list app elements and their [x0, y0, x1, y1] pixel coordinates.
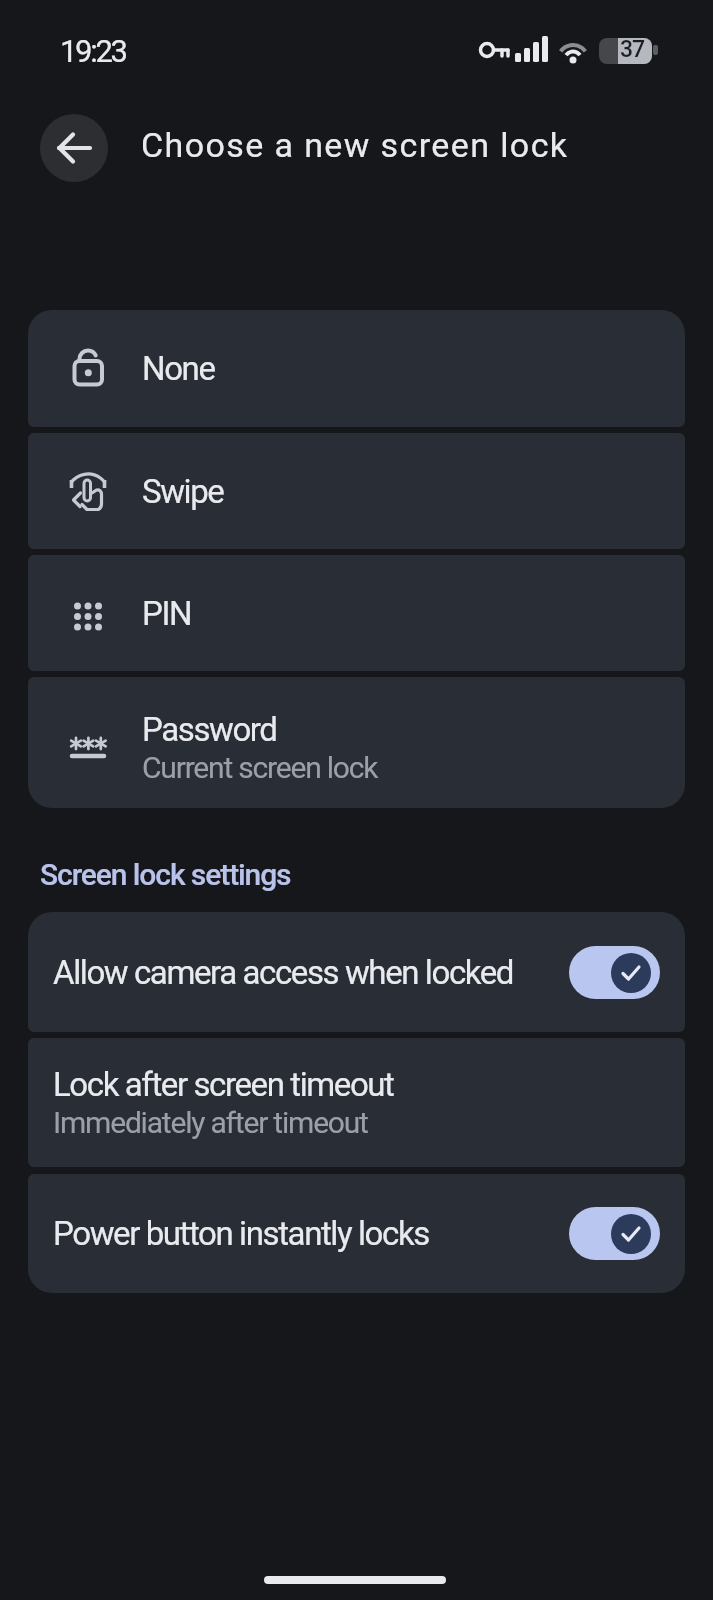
staticText: PIN [142, 594, 192, 633]
staticText: Allow camera access when locked [53, 953, 514, 992]
staticText: Swipe [142, 472, 224, 511]
staticText: Password [142, 710, 277, 749]
staticText: None [142, 349, 215, 388]
staticText: Choose a new screen lock [141, 125, 569, 165]
button[interactable]: Power button instantly locks [28, 1174, 685, 1293]
staticText: Current screen lock [142, 750, 378, 785]
staticText: 19:23 [60, 33, 126, 69]
button[interactable]: Lock after screen timeout [28, 1038, 685, 1167]
staticText: 37 [620, 36, 645, 63]
staticText: Immediately after timeout [53, 1105, 368, 1140]
button[interactable] [569, 1207, 660, 1260]
staticText: Power button instantly locks [53, 1214, 429, 1253]
staticText: Screen lock settings [40, 857, 291, 892]
button[interactable]: Swipe [28, 433, 685, 549]
button[interactable]: Password [28, 677, 685, 808]
staticText: Lock after screen timeout [53, 1065, 394, 1104]
button[interactable]: None [28, 310, 685, 427]
button[interactable] [569, 946, 660, 999]
button[interactable]: Allow camera access when locked [28, 912, 685, 1032]
button[interactable]: PIN [28, 555, 685, 671]
button[interactable] [40, 114, 108, 182]
